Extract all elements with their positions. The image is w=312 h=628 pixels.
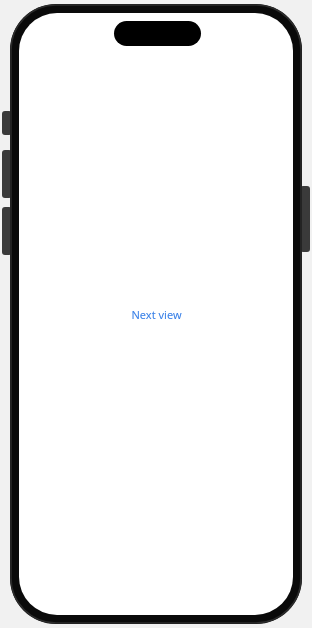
button[interactable]: Next view [131,307,182,322]
staticText: Next view [131,307,182,322]
